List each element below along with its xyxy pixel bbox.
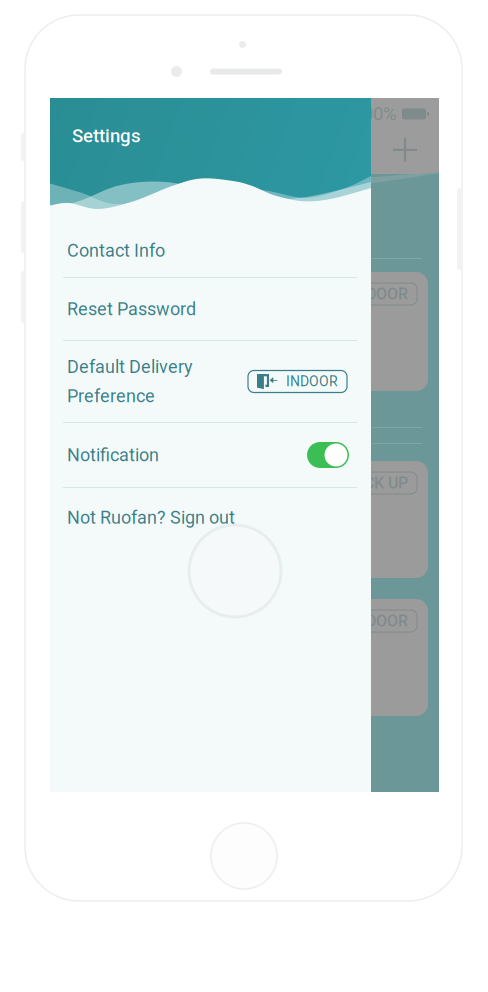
button[interactable]: PICK UP [260,461,428,578]
button[interactable]: Add [384,129,426,171]
button[interactable]: INDOOR [260,272,428,391]
button[interactable]: Reset Password [50,278,371,340]
staticText: 100% [353,103,397,125]
staticText: Contact Info [67,240,165,261]
staticText: INDOOR [350,285,408,303]
staticText: Settings [72,125,141,147]
button[interactable]: Notification [50,423,371,487]
button[interactable]: Home [211,823,277,889]
staticText: Default Delivery [67,356,193,377]
staticText: INDOOR [350,612,408,630]
button[interactable]: Not Ruofan? Sign out [50,488,371,547]
staticText: Preference [67,385,155,407]
staticText: Reset Password [67,298,196,320]
button[interactable]: Default Delivery [50,341,371,422]
staticText: INDOOR [286,373,338,390]
button[interactable]: INDOOR [260,599,428,716]
staticText: Notification [67,444,159,466]
staticText: PICK UP [349,474,408,492]
staticText: Not Ruofan? Sign out [67,507,235,528]
button[interactable]: Contact Info [50,224,371,277]
